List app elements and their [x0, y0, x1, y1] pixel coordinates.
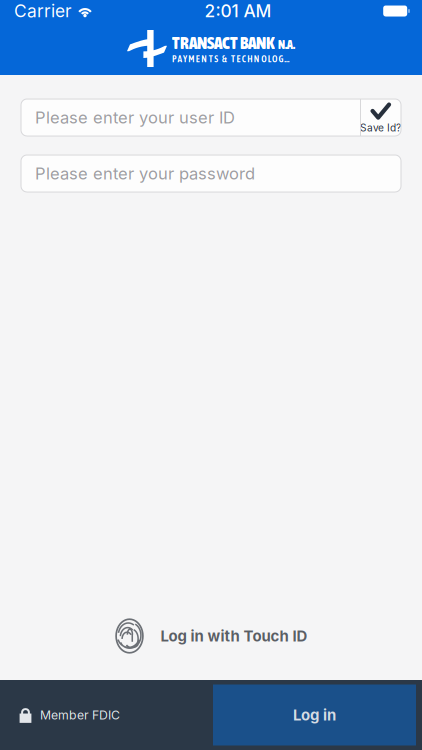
- button[interactable]: Log in with Touch ID: [98, 612, 323, 660]
- staticText: TRANSACT BANK: [172, 33, 274, 53]
- staticText: Please enter your password: [35, 163, 255, 183]
- staticText: Log in: [293, 706, 336, 724]
- staticText: Log in with Touch ID: [160, 627, 307, 645]
- staticText: Save Id?: [360, 122, 401, 134]
- staticText: PAYMENTS & TECHNOLOGY: [172, 54, 289, 64]
- button[interactable]: Log in: [213, 684, 416, 745]
- staticText: Carrier: [14, 0, 72, 21]
- staticText: N.A.: [278, 38, 295, 52]
- staticText: Please enter your user ID: [35, 107, 235, 127]
- button[interactable]: Save ID: [360, 99, 401, 136]
- staticText: 2:01 AM: [204, 0, 271, 21]
- staticText: Member FDIC: [40, 708, 120, 722]
